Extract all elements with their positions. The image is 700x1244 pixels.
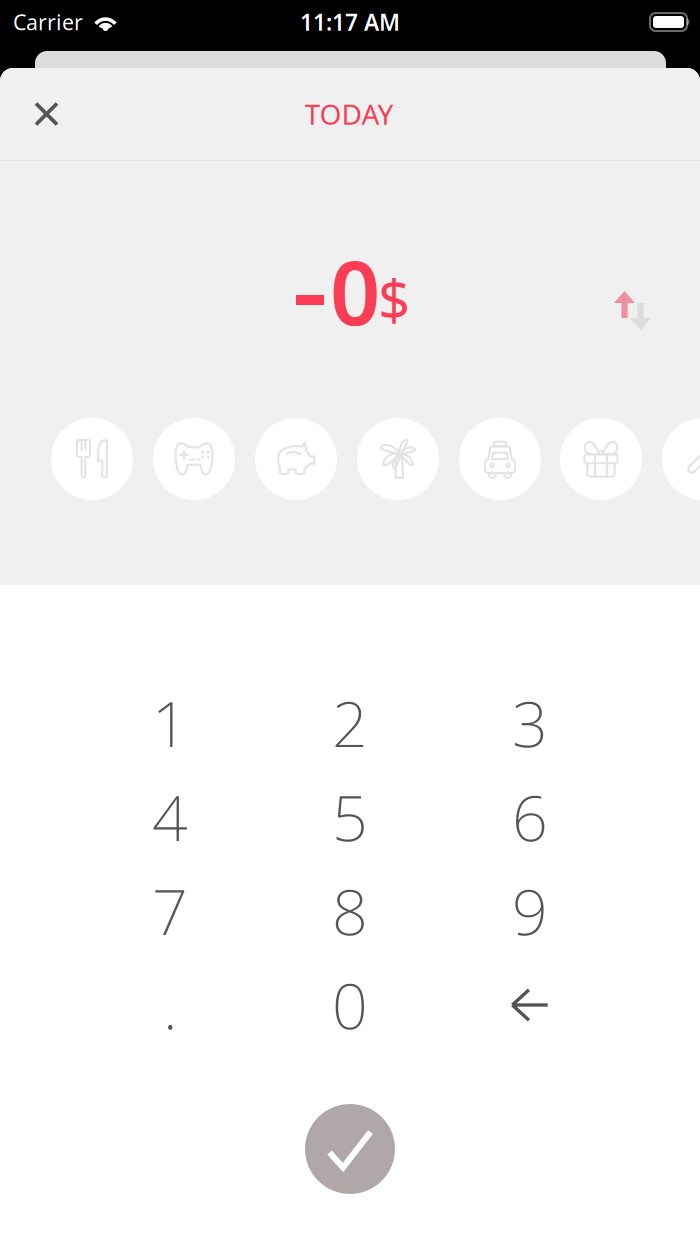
- staticText: 7: [152, 869, 188, 953]
- staticText: $: [378, 262, 410, 336]
- staticText: 2: [332, 681, 368, 765]
- button[interactable]: 5: [260, 770, 440, 864]
- staticText: TODAY: [304, 95, 393, 133]
- button[interactable]: Category 5: [459, 418, 541, 500]
- staticText: 11:17 AM: [300, 7, 400, 37]
- staticText: 1: [152, 681, 188, 765]
- button[interactable]: 2: [260, 676, 440, 770]
- button[interactable]: Category 1: [51, 418, 133, 500]
- staticText: 6: [512, 775, 548, 859]
- staticText: 4: [152, 775, 188, 859]
- button[interactable]: 3: [440, 676, 620, 770]
- staticText: 0: [332, 963, 368, 1047]
- button[interactable]: Close: [18, 85, 75, 142]
- button[interactable]: Delete: [440, 958, 620, 1052]
- button[interactable]: 4: [80, 770, 260, 864]
- button[interactable]: Toggle income or expense: [598, 276, 666, 346]
- button[interactable]: 1: [80, 676, 260, 770]
- button[interactable]: Category 3: [255, 418, 337, 500]
- staticText: 8: [332, 869, 368, 953]
- button[interactable]: 0: [260, 958, 440, 1052]
- staticText: 0: [330, 233, 380, 349]
- button[interactable]: .: [80, 958, 260, 1052]
- staticText: 9: [512, 869, 548, 953]
- button[interactable]: Confirm: [305, 1104, 395, 1194]
- button[interactable]: Category 2: [153, 418, 235, 500]
- button[interactable]: 7: [80, 864, 260, 958]
- button[interactable]: Category 6: [560, 418, 642, 500]
- staticText: 5: [332, 775, 368, 859]
- staticText: 3: [512, 681, 548, 765]
- button[interactable]: 6: [440, 770, 620, 864]
- button[interactable]: Category 4: [357, 418, 439, 500]
- button[interactable]: TODAY: [280, 83, 417, 145]
- staticText: .: [163, 963, 177, 1047]
- button[interactable]: 9: [440, 864, 620, 958]
- button[interactable]: Category 7: [662, 418, 700, 500]
- staticText: Carrier: [13, 8, 83, 36]
- button[interactable]: 8: [260, 864, 440, 958]
